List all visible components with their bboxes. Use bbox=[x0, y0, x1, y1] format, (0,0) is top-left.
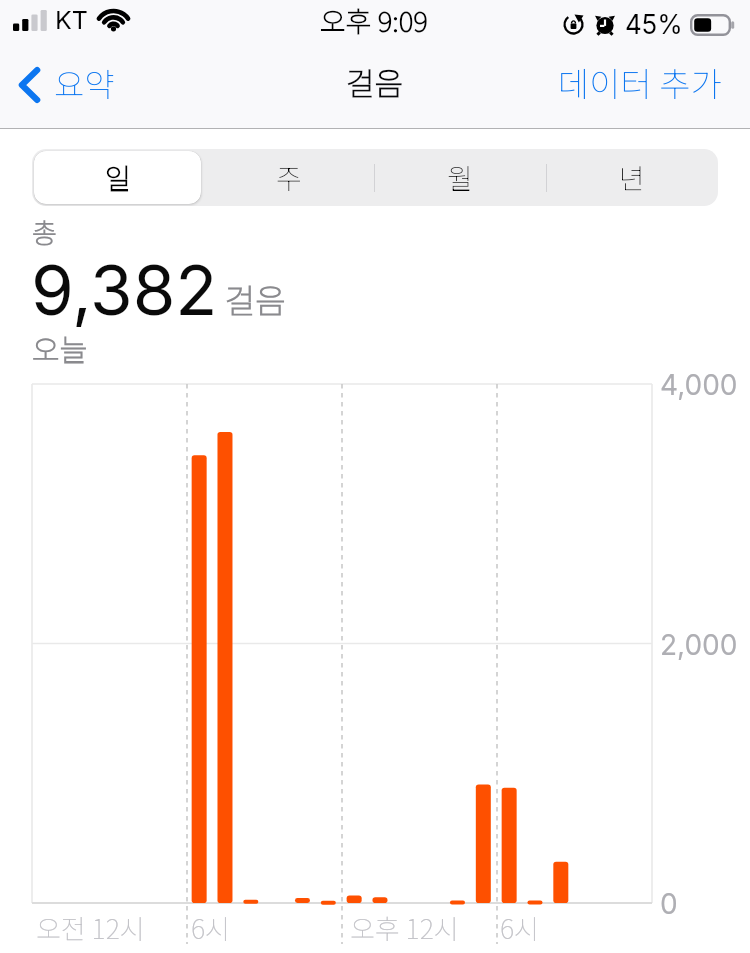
button[interactable]: 주 bbox=[203, 149, 374, 206]
other: Back bbox=[18, 64, 42, 106]
other: Alarm bbox=[593, 13, 617, 37]
staticText: 오후 9:09 bbox=[320, 0, 428, 41]
staticText: 오전 12시 bbox=[36, 908, 145, 947]
staticText: 주 bbox=[276, 157, 302, 198]
staticText: 0 bbox=[660, 887, 678, 921]
staticText: 6시 bbox=[191, 908, 230, 947]
staticText: 월 bbox=[447, 157, 473, 198]
staticText: 일 bbox=[105, 157, 131, 198]
staticText: 45% bbox=[625, 9, 683, 40]
staticText: 6시 bbox=[500, 908, 539, 947]
staticText: 걸음 bbox=[225, 275, 286, 323]
staticText: 오늘 bbox=[32, 326, 88, 369]
staticText: 요약 bbox=[54, 59, 115, 107]
button[interactable]: Back bbox=[18, 60, 115, 120]
button[interactable]: 월 bbox=[374, 149, 546, 206]
other: Wi-Fi bbox=[97, 9, 130, 31]
staticText: 4,000 bbox=[660, 368, 738, 402]
staticText: 년 bbox=[619, 157, 645, 198]
staticText: 9,382 bbox=[31, 248, 218, 331]
button[interactable]: 데이터 추가 bbox=[558, 60, 722, 120]
staticText: 2,000 bbox=[660, 628, 738, 662]
staticText: 총 bbox=[32, 212, 57, 251]
staticText: KT bbox=[55, 5, 88, 35]
staticText: 데이터 추가 bbox=[558, 58, 722, 107]
button[interactable]: 일 bbox=[32, 149, 203, 206]
button[interactable]: 년 bbox=[546, 149, 718, 206]
staticText: 오후 12시 bbox=[350, 908, 459, 947]
other: Cellular signal bbox=[13, 10, 47, 31]
staticText: 걸음 bbox=[346, 59, 404, 104]
other: Battery 45 percent bbox=[690, 14, 736, 36]
other: Rotation lock bbox=[563, 14, 584, 35]
